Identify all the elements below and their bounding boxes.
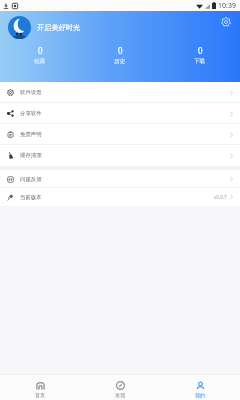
button[interactable]: 缓存清理 <box>0 145 240 166</box>
button[interactable]: 我的 <box>160 381 240 400</box>
staticText: 首页 <box>35 392 45 398</box>
staticText: 0 <box>118 45 123 56</box>
staticText: 收藏 <box>34 58 46 65</box>
staticText: 历史 <box>114 58 126 65</box>
staticText: 发现 <box>115 392 125 398</box>
button[interactable]: 免责声明 <box>0 124 240 145</box>
staticText: 软件设置 <box>20 89 42 96</box>
button[interactable]: Settings <box>218 14 234 30</box>
button[interactable]: 当前版本 <box>0 188 240 206</box>
staticText: 缓存清理 <box>20 152 42 159</box>
staticText: 问题反馈 <box>20 176 42 183</box>
button[interactable]: 软件设置 <box>0 82 240 103</box>
staticText: 我的 <box>195 392 205 398</box>
staticText: 当前版本 <box>20 194 42 201</box>
staticText: 10:39 <box>218 1 236 11</box>
button[interactable]: 首页 <box>0 381 80 400</box>
button[interactable]: 分享软件 <box>0 103 240 124</box>
staticText: 分享软件 <box>20 110 42 117</box>
button[interactable] <box>8 16 31 39</box>
button[interactable]: 发现 <box>80 381 160 400</box>
button[interactable]: 问题反馈 <box>0 170 240 188</box>
staticText: 免责声明 <box>20 131 42 138</box>
staticText: v0.9.7 <box>214 194 227 200</box>
button[interactable]: 0 <box>160 45 240 65</box>
staticText: 0 <box>38 45 43 56</box>
button[interactable]: 0 <box>80 45 160 65</box>
staticText: 0 <box>198 45 203 56</box>
staticText: 下载 <box>194 58 206 65</box>
staticText: 开启美好时光 <box>37 23 81 32</box>
button[interactable]: 0 <box>0 45 80 65</box>
